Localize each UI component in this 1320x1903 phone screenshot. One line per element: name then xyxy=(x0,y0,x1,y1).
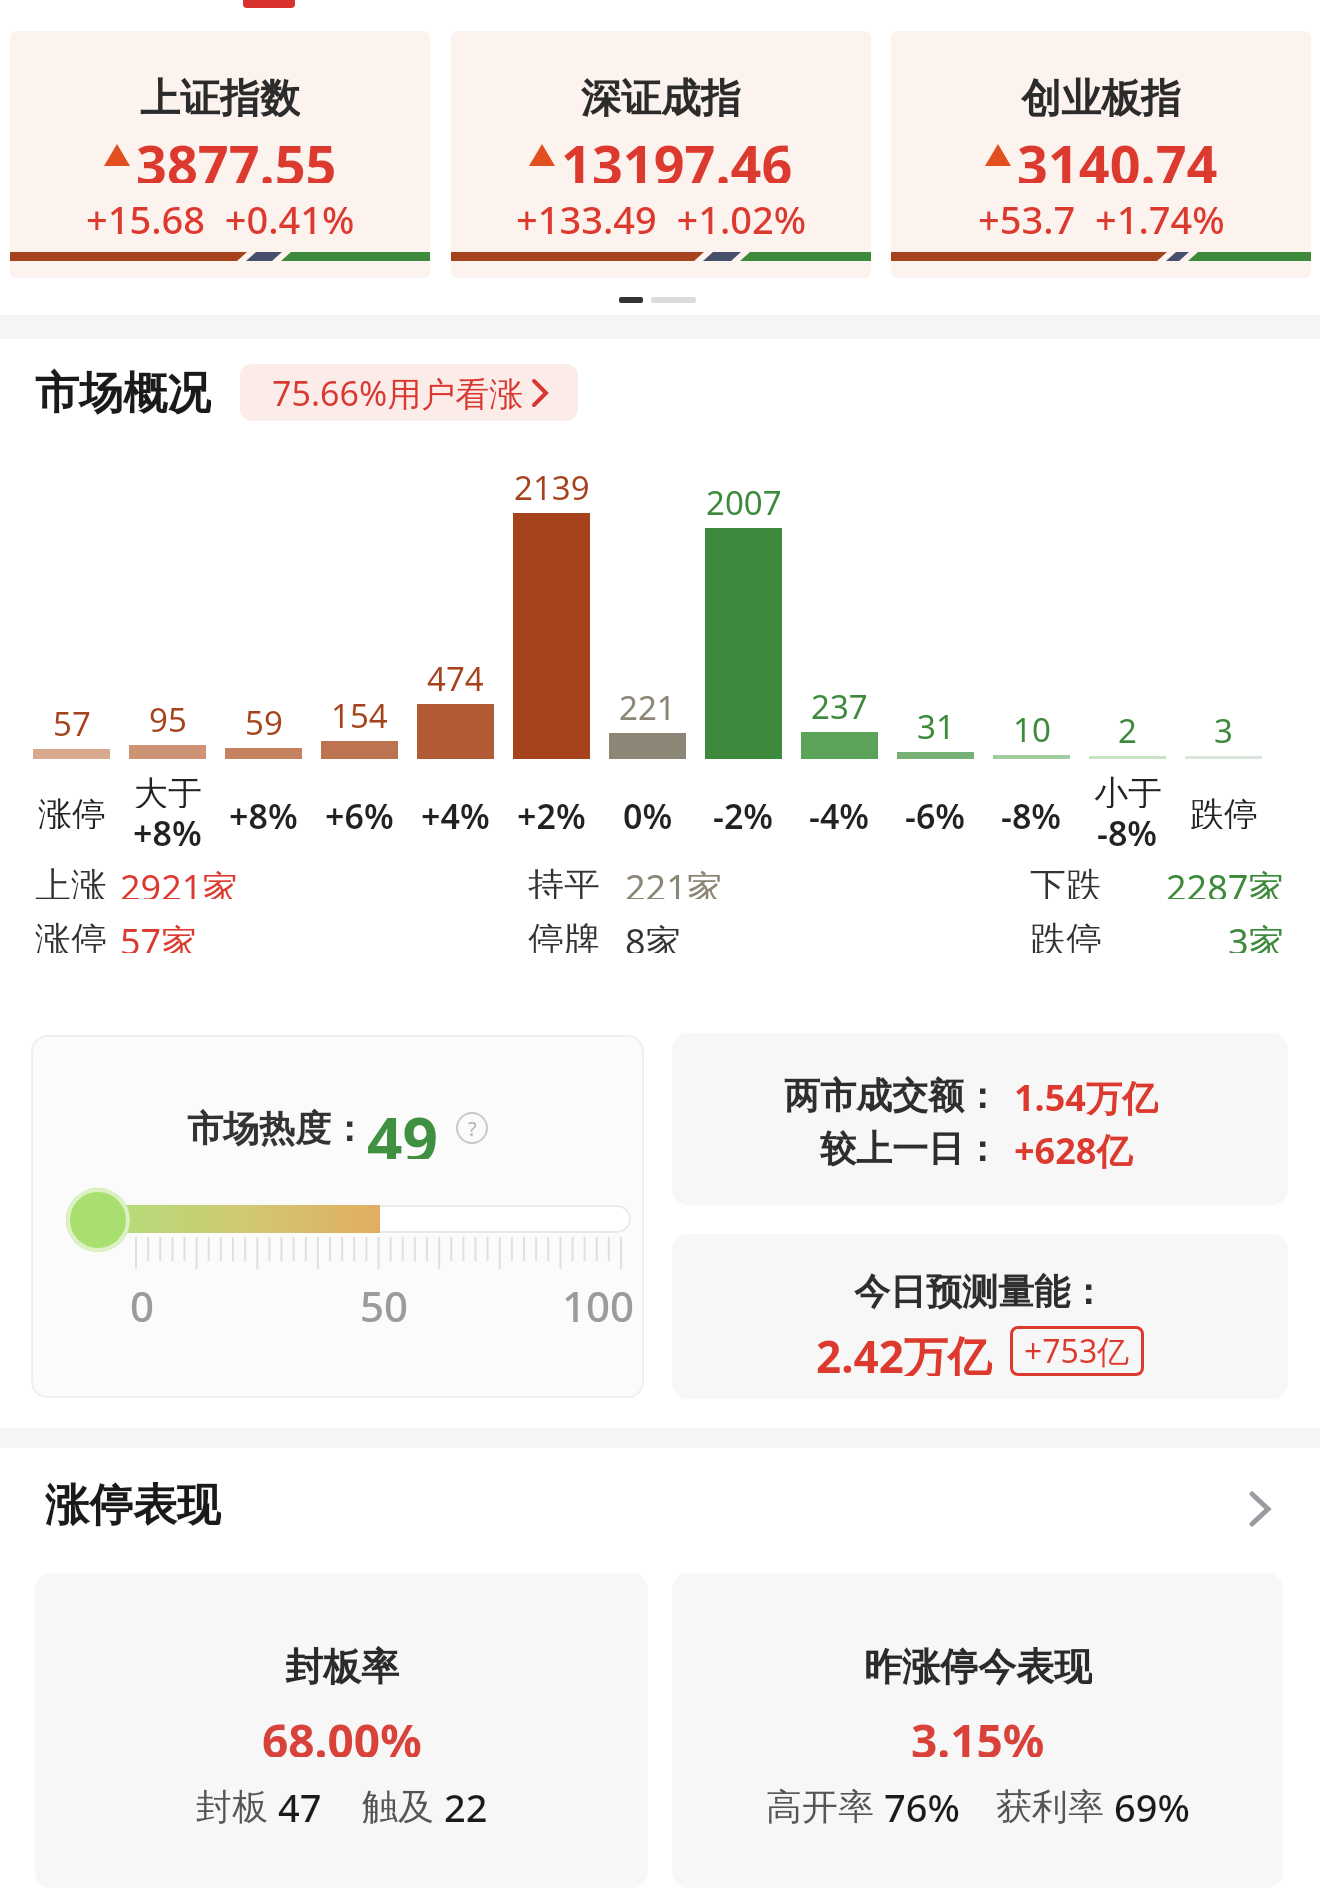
staticText: 57 xyxy=(53,701,91,739)
button[interactable]: 上证指数 xyxy=(10,31,430,278)
staticText: 76% xyxy=(884,1781,960,1825)
staticText: 3877.55 xyxy=(136,127,337,183)
staticText: 市场热度： xyxy=(187,1106,367,1151)
staticText: 50 xyxy=(360,1277,409,1325)
staticText: 小于 xyxy=(1094,772,1162,808)
staticText: 高开率 xyxy=(766,1781,884,1825)
staticText: 57家 xyxy=(120,917,198,953)
button[interactable]: 今日预测量能： xyxy=(672,1234,1288,1399)
staticText: 31 xyxy=(917,704,955,742)
staticText: 47 xyxy=(278,1781,322,1825)
staticText: 涨停 xyxy=(35,917,107,953)
staticText: 69% xyxy=(1114,1781,1190,1825)
staticText: 3 xyxy=(1214,708,1233,746)
staticText: 0% xyxy=(623,793,673,829)
staticText: 停牌 xyxy=(528,917,600,953)
staticText: 75.66%用户看涨 xyxy=(272,370,524,416)
staticText: +15.68 +0.41% xyxy=(86,193,355,235)
staticText: 跌停 xyxy=(1190,793,1258,829)
staticText: ? xyxy=(468,1115,477,1142)
staticText: 2.42万亿 xyxy=(816,1326,992,1376)
staticText: +53.7 +1.74% xyxy=(978,193,1225,235)
staticText: -2% xyxy=(713,793,774,829)
staticText: 封板率 xyxy=(285,1643,399,1687)
staticText: 2139 xyxy=(514,465,590,503)
staticText: +753亿 xyxy=(1024,1329,1130,1373)
staticText: 大于 xyxy=(134,772,202,808)
staticText: 持平 xyxy=(528,863,600,899)
button[interactable]: 昨涨停今表现 xyxy=(672,1573,1283,1888)
staticText: -8% xyxy=(1097,810,1158,846)
staticText: 下跌 xyxy=(1030,863,1102,899)
staticText: 3.15% xyxy=(911,1709,1045,1757)
staticText: 2287家 xyxy=(1166,863,1285,899)
staticText: 涨停 xyxy=(38,793,106,829)
staticText: 13197.46 xyxy=(561,127,793,183)
staticText: +628亿 xyxy=(1014,1126,1133,1170)
staticText: 创业板指 xyxy=(1021,73,1181,117)
staticText: 3家 xyxy=(1228,917,1285,953)
staticText: 22 xyxy=(444,1781,488,1825)
button[interactable]: 市场热度： xyxy=(31,1035,644,1398)
staticText: 两市成交额： xyxy=(784,1073,1000,1117)
staticText: 100 xyxy=(562,1277,635,1325)
staticText: 2921家 xyxy=(120,863,239,899)
staticText: 2007 xyxy=(706,480,782,518)
button[interactable]: 两市成交额： xyxy=(672,1033,1288,1205)
staticText: 8家 xyxy=(625,917,682,953)
staticText: 获利率 xyxy=(996,1781,1114,1825)
staticText: 触及 xyxy=(362,1781,444,1825)
staticText: 市场概况 xyxy=(35,366,211,418)
staticText: 涨停表现 xyxy=(45,1478,221,1532)
button[interactable]: 深证成指 xyxy=(451,31,871,278)
staticText: 2 xyxy=(1118,708,1137,746)
staticText: 跌停 xyxy=(1030,917,1102,953)
button[interactable]: 创业板指 xyxy=(891,31,1311,278)
staticText: 49 xyxy=(367,1097,438,1159)
staticText: 昨涨停今表现 xyxy=(864,1643,1092,1687)
staticText: 68.00% xyxy=(262,1709,422,1757)
staticText: 深证成指 xyxy=(581,73,741,117)
staticText: +6% xyxy=(325,793,394,829)
staticText: 474 xyxy=(427,656,484,694)
staticText: 10 xyxy=(1013,707,1051,745)
staticText: 237 xyxy=(811,684,868,722)
staticText: 较上一日： xyxy=(820,1126,1000,1170)
staticText: +4% xyxy=(421,793,490,829)
staticText: +133.49 +1.02% xyxy=(516,193,807,235)
staticText: -6% xyxy=(905,793,966,829)
staticText: 今日预测量能： xyxy=(854,1269,1106,1313)
staticText: 3140.74 xyxy=(1017,127,1218,183)
staticText: 59 xyxy=(245,700,283,738)
staticText: +2% xyxy=(517,793,586,829)
staticText: 221家 xyxy=(625,863,723,899)
staticText: +8% xyxy=(229,793,298,829)
button[interactable]: 75.66%用户看涨 xyxy=(240,364,578,421)
staticText: 0 xyxy=(130,1277,155,1325)
staticText: -8% xyxy=(1001,793,1062,829)
button[interactable]: 封板率 xyxy=(35,1573,648,1888)
staticText: 95 xyxy=(149,697,187,735)
staticText: 封板 xyxy=(196,1781,278,1825)
staticText: +8% xyxy=(133,810,202,846)
staticText: -4% xyxy=(809,793,870,829)
staticText: 1.54万亿 xyxy=(1014,1073,1158,1117)
staticText: 上证指数 xyxy=(140,73,300,117)
staticText: 221 xyxy=(619,685,676,723)
staticText: 154 xyxy=(331,693,388,731)
staticText: 上涨 xyxy=(35,863,107,899)
